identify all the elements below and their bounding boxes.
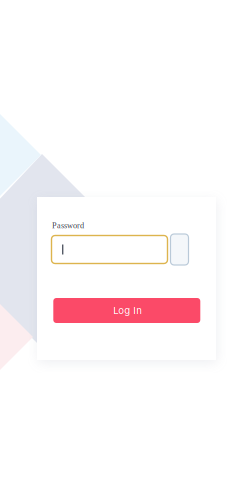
staticText: Password [52,221,84,230]
button[interactable]: Show password [170,234,188,265]
button[interactable]: Log In [53,298,200,323]
staticText: Log In [113,305,142,316]
